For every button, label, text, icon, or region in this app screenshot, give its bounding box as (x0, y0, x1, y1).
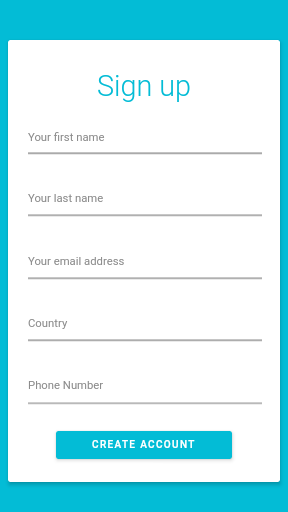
staticText: Your first name (28, 131, 105, 144)
staticText: Your last name (28, 192, 104, 205)
button[interactable]: Your last name (28, 192, 262, 218)
button[interactable]: CREATE ACCOUNT (56, 431, 232, 459)
button[interactable]: Phone Number (28, 379, 262, 406)
staticText: Sign up (8, 69, 280, 103)
staticText: Country (28, 317, 68, 330)
button[interactable]: Country (28, 317, 262, 343)
staticText: Your email address (28, 255, 125, 268)
button[interactable]: Your first name (28, 131, 262, 156)
staticText: CREATE ACCOUNT (92, 439, 196, 451)
staticText: Phone Number (28, 379, 104, 392)
button[interactable]: Your email address (28, 255, 262, 281)
